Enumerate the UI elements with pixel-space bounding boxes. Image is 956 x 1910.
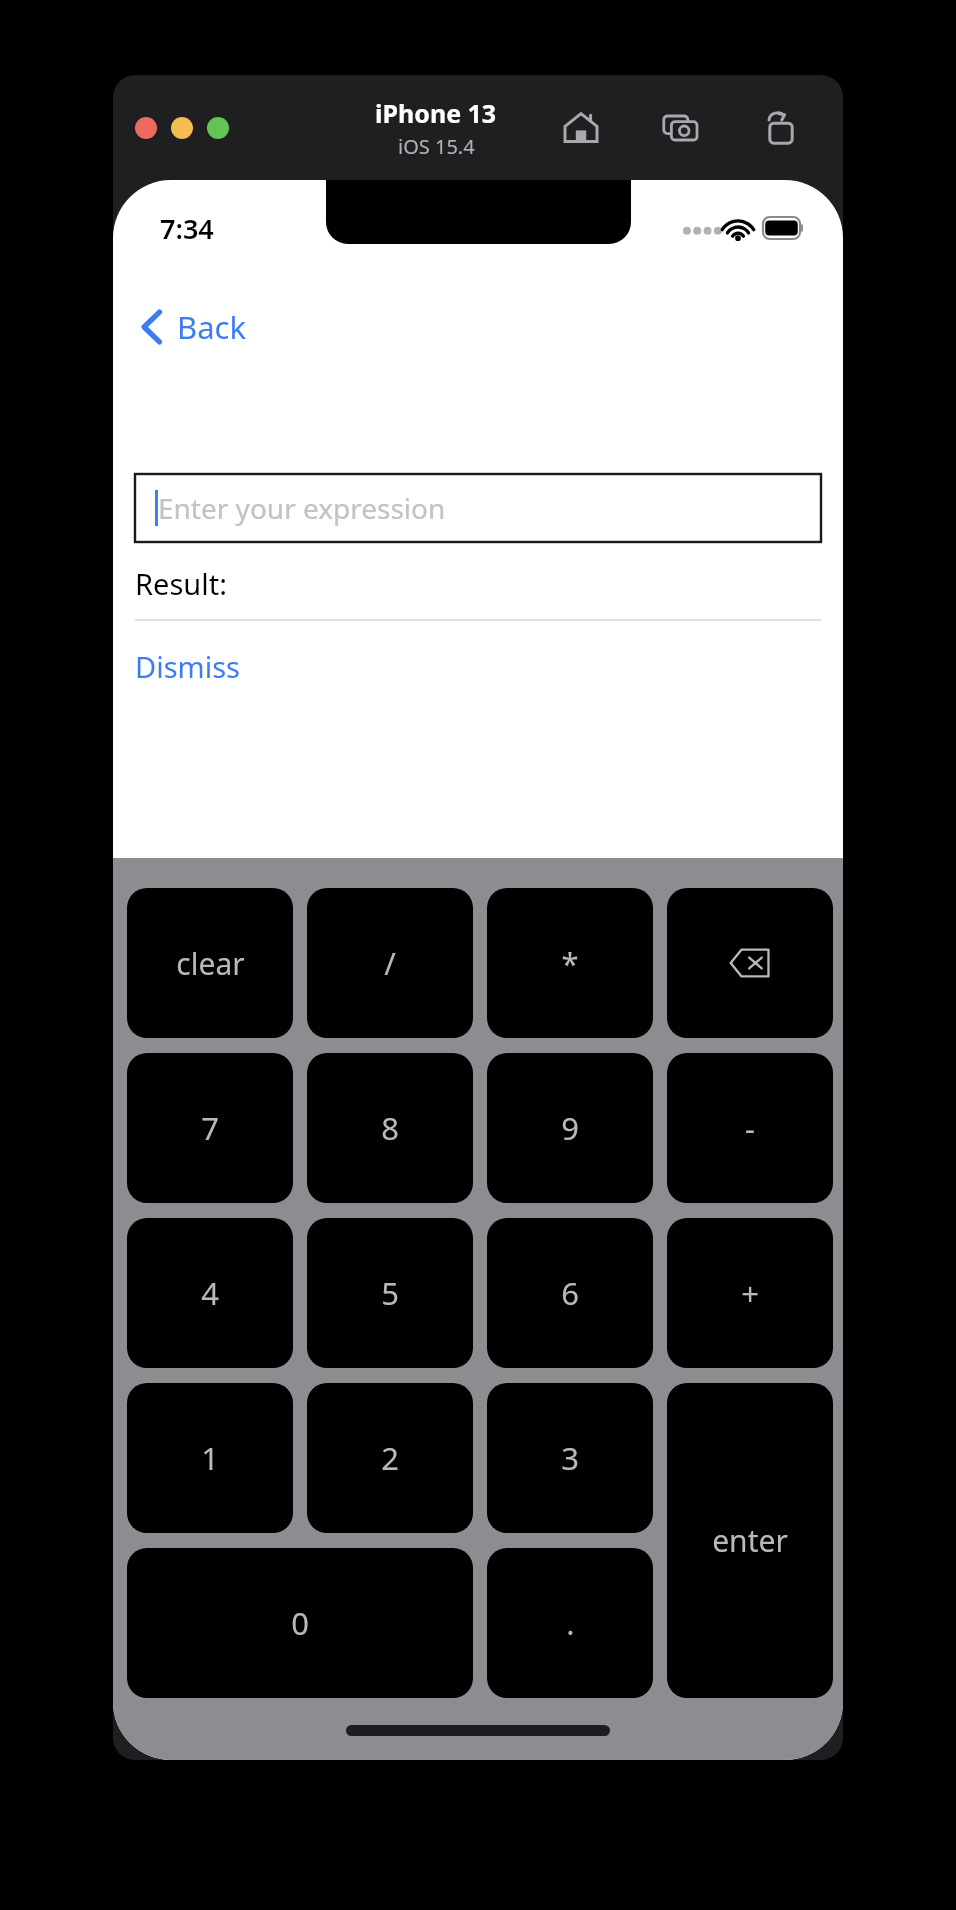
staticText: Back — [177, 306, 246, 348]
staticText: 3 — [561, 1437, 579, 1479]
button[interactable]: enter — [667, 1383, 833, 1698]
staticText: 2 — [381, 1437, 399, 1479]
staticText: Enter your expression — [158, 489, 446, 527]
staticText: 0 — [291, 1602, 309, 1644]
button[interactable]: Home — [557, 104, 605, 152]
staticText: 7 — [201, 1107, 219, 1149]
staticText: 6 — [561, 1272, 579, 1314]
staticText: Result: — [135, 564, 227, 603]
button[interactable]: Zoom — [207, 117, 229, 139]
button[interactable]: + — [667, 1218, 833, 1368]
staticText: 4 — [201, 1272, 219, 1314]
button[interactable]: / — [307, 888, 473, 1038]
staticText: 8 — [381, 1107, 399, 1149]
staticText: . — [566, 1602, 575, 1644]
staticText: iPhone 13 — [375, 96, 497, 130]
staticText: clear — [176, 943, 245, 984]
button[interactable]: Enter your expression — [135, 474, 821, 542]
button[interactable]: 0 — [127, 1548, 473, 1698]
staticText: 7:34 — [160, 210, 214, 247]
button[interactable]: * — [487, 888, 653, 1038]
staticText: * — [561, 942, 579, 984]
button[interactable]: Back — [133, 298, 254, 356]
button[interactable]: Close — [135, 117, 157, 139]
staticText: + — [741, 1272, 759, 1314]
button[interactable]: Backspace — [667, 888, 833, 1038]
button[interactable]: - — [667, 1053, 833, 1203]
button[interactable]: Screenshot — [657, 104, 705, 152]
staticText: 1 — [201, 1437, 219, 1479]
button[interactable]: 3 — [487, 1383, 653, 1533]
button[interactable]: 5 — [307, 1218, 473, 1368]
button[interactable]: Rotate — [757, 104, 805, 152]
staticText: iOS 15.4 — [398, 133, 475, 160]
button[interactable]: 4 — [127, 1218, 293, 1368]
button[interactable]: 7 — [127, 1053, 293, 1203]
button[interactable]: 1 — [127, 1383, 293, 1533]
staticText: - — [745, 1107, 755, 1149]
staticText: Dismiss — [135, 647, 240, 686]
button[interactable]: 2 — [307, 1383, 473, 1533]
staticText: / — [384, 942, 396, 984]
staticText: 5 — [381, 1272, 399, 1314]
staticText: 9 — [561, 1107, 579, 1149]
button[interactable]: 9 — [487, 1053, 653, 1203]
button[interactable]: . — [487, 1548, 653, 1698]
button[interactable]: Minimize — [171, 117, 193, 139]
staticText: enter — [712, 1520, 788, 1561]
button[interactable]: 6 — [487, 1218, 653, 1368]
button[interactable]: Dismiss — [127, 641, 248, 692]
button[interactable]: clear — [127, 888, 293, 1038]
button[interactable]: 8 — [307, 1053, 473, 1203]
